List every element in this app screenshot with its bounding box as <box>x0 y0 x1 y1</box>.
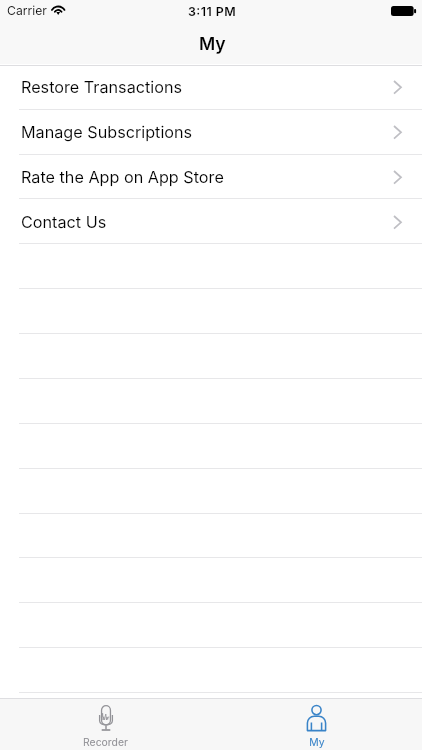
staticText: Carrier <box>7 3 47 18</box>
button[interactable]: Restore Transactions <box>0 64 422 109</box>
staticText: Manage Subscriptions <box>21 122 193 142</box>
button[interactable]: Manage Subscriptions <box>0 109 422 154</box>
button[interactable]: Contact Us <box>0 199 422 244</box>
staticText: My <box>199 33 226 54</box>
staticText: 3:11 PM <box>188 4 237 19</box>
staticText: Contact Us <box>21 212 107 232</box>
button[interactable]: My tab <box>211 698 422 750</box>
staticText: Rate the App on App Store <box>21 167 224 187</box>
staticText: Restore Transactions <box>21 77 183 97</box>
staticText: Recorder <box>83 736 128 749</box>
staticText: My <box>309 736 325 749</box>
button[interactable]: Recorder tab <box>0 698 211 750</box>
button[interactable]: Rate the App on App Store <box>0 154 422 199</box>
